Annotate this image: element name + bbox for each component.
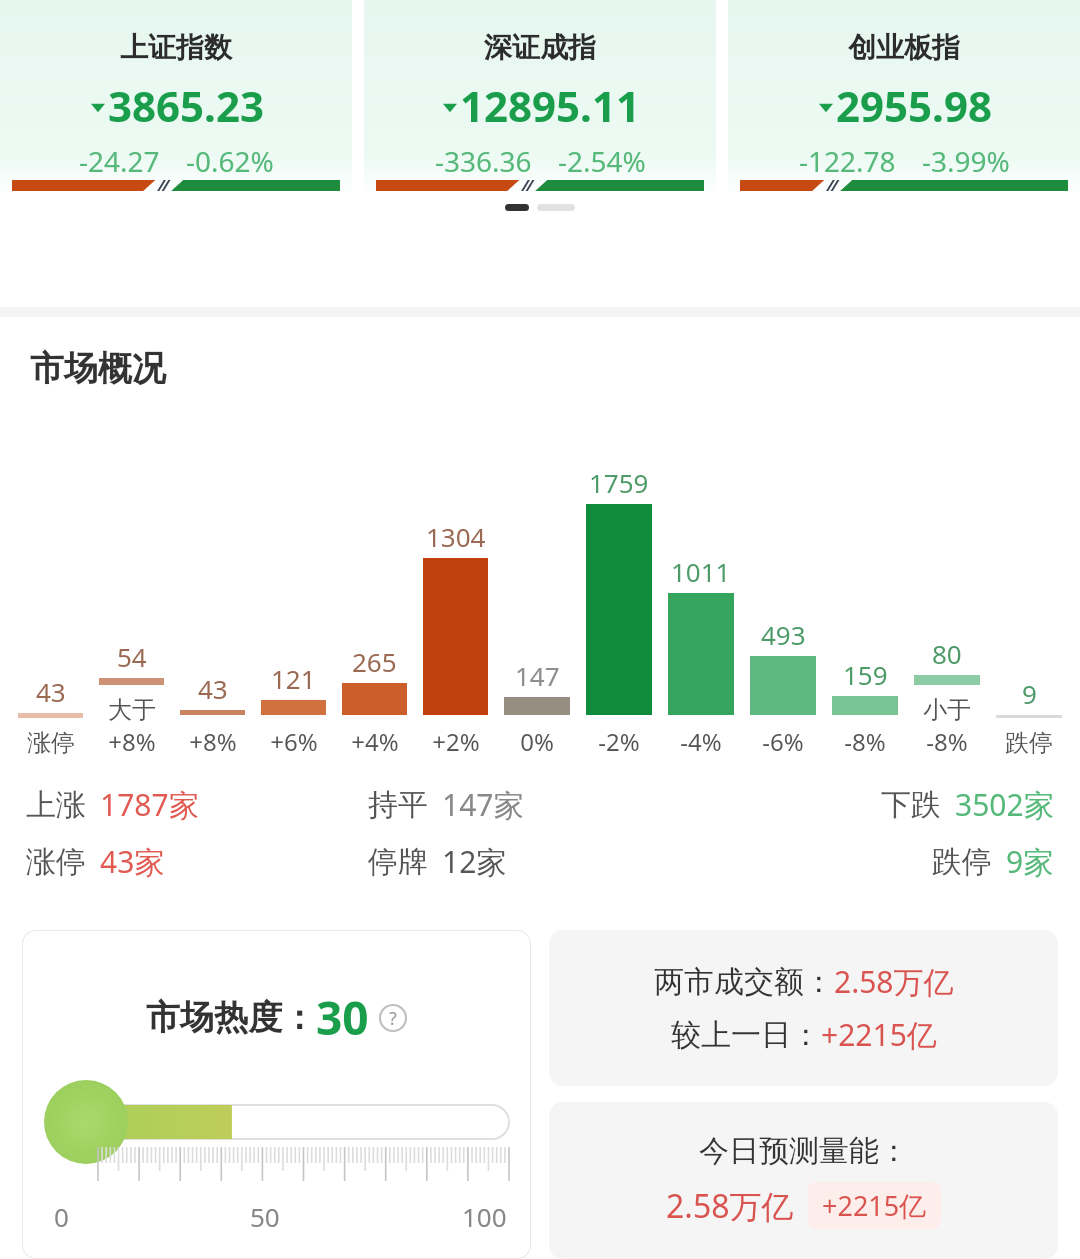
staticText: -2% bbox=[598, 725, 640, 758]
staticText: 0% bbox=[520, 725, 554, 758]
staticText: 43 bbox=[36, 674, 66, 709]
staticText: 今日预测量能： bbox=[699, 1132, 909, 1170]
staticText: 3865.23 bbox=[108, 77, 264, 134]
staticText: 创业板指 bbox=[848, 30, 960, 65]
staticText: +2215亿 bbox=[821, 1014, 937, 1055]
staticText: 两市成交额： bbox=[654, 963, 834, 1001]
staticText: 43家 bbox=[100, 841, 165, 882]
staticText: 493 bbox=[761, 617, 806, 652]
staticText: -3.99% bbox=[922, 142, 1010, 180]
staticText: 100 bbox=[462, 1199, 507, 1234]
staticText: 3502家 bbox=[955, 784, 1054, 825]
button[interactable]: 市场热度： bbox=[22, 930, 531, 1259]
button[interactable]: 两市成交额： bbox=[549, 930, 1058, 1086]
staticText: 跌停 bbox=[1005, 728, 1053, 758]
staticText: 上证指数 bbox=[120, 30, 232, 65]
staticText: 下跌 bbox=[881, 786, 941, 824]
button[interactable]: 创业板指 bbox=[728, 0, 1080, 196]
staticText: -2.54% bbox=[558, 142, 646, 180]
staticText: 43 bbox=[198, 671, 228, 706]
staticText: 市场热度： bbox=[146, 996, 316, 1039]
staticText: -4% bbox=[680, 725, 722, 758]
staticText: 1011 bbox=[671, 554, 731, 589]
staticText: 涨停 bbox=[26, 843, 86, 881]
staticText: 2955.98 bbox=[836, 77, 992, 134]
staticText: -24.27 bbox=[79, 142, 160, 180]
staticText: 121 bbox=[271, 661, 316, 696]
button[interactable]: 上证指数 bbox=[0, 0, 352, 196]
staticText: 2.58万亿 bbox=[666, 1184, 794, 1228]
staticText: 持平 bbox=[368, 786, 428, 824]
staticText: 2.58万亿 bbox=[834, 961, 954, 1002]
staticText: ? bbox=[389, 1006, 397, 1031]
staticText: 跌停 bbox=[932, 843, 992, 881]
staticText: 1759 bbox=[589, 465, 649, 500]
staticText: 1787家 bbox=[100, 784, 199, 825]
staticText: 50 bbox=[250, 1199, 280, 1234]
staticText: 停牌 bbox=[368, 843, 428, 881]
button[interactable]: 今日预测量能： bbox=[549, 1102, 1058, 1259]
staticText: 上涨 bbox=[26, 786, 86, 824]
staticText: 265 bbox=[352, 644, 397, 679]
staticText: +6% bbox=[270, 725, 318, 758]
staticText: 9家 bbox=[1006, 841, 1054, 882]
staticText: -122.78 bbox=[799, 142, 896, 180]
staticText: +2215亿 bbox=[822, 1187, 927, 1224]
staticText: +8% bbox=[108, 725, 156, 758]
staticText: +4% bbox=[351, 725, 399, 758]
staticText: 54 bbox=[117, 639, 147, 674]
staticText: -8% bbox=[926, 725, 968, 758]
staticText: 12895.11 bbox=[460, 77, 640, 134]
staticText: 深证成指 bbox=[484, 30, 596, 65]
staticText: 市场概况 bbox=[30, 347, 166, 390]
staticText: 9 bbox=[1022, 676, 1037, 711]
staticText: +8% bbox=[189, 725, 237, 758]
staticText: -336.36 bbox=[435, 142, 532, 180]
staticText: 80 bbox=[932, 636, 962, 671]
staticText: 147家 bbox=[442, 784, 524, 825]
staticText: +2% bbox=[432, 725, 480, 758]
button[interactable]: 市场热度说明 bbox=[379, 1004, 407, 1032]
staticText: 1304 bbox=[426, 519, 486, 554]
staticText: -8% bbox=[844, 725, 886, 758]
staticText: 大于 bbox=[108, 695, 156, 725]
staticText: 159 bbox=[843, 657, 888, 692]
staticText: 12家 bbox=[442, 841, 507, 882]
staticText: 0 bbox=[54, 1199, 69, 1234]
staticText: -6% bbox=[762, 725, 804, 758]
staticText: 147 bbox=[515, 658, 560, 693]
button[interactable]: 深证成指 bbox=[364, 0, 716, 196]
staticText: 30 bbox=[316, 986, 369, 1049]
staticText: -0.62% bbox=[186, 142, 274, 180]
staticText: 较上一日： bbox=[671, 1016, 821, 1054]
staticText: 涨停 bbox=[27, 728, 75, 758]
staticText: 小于 bbox=[923, 695, 971, 725]
